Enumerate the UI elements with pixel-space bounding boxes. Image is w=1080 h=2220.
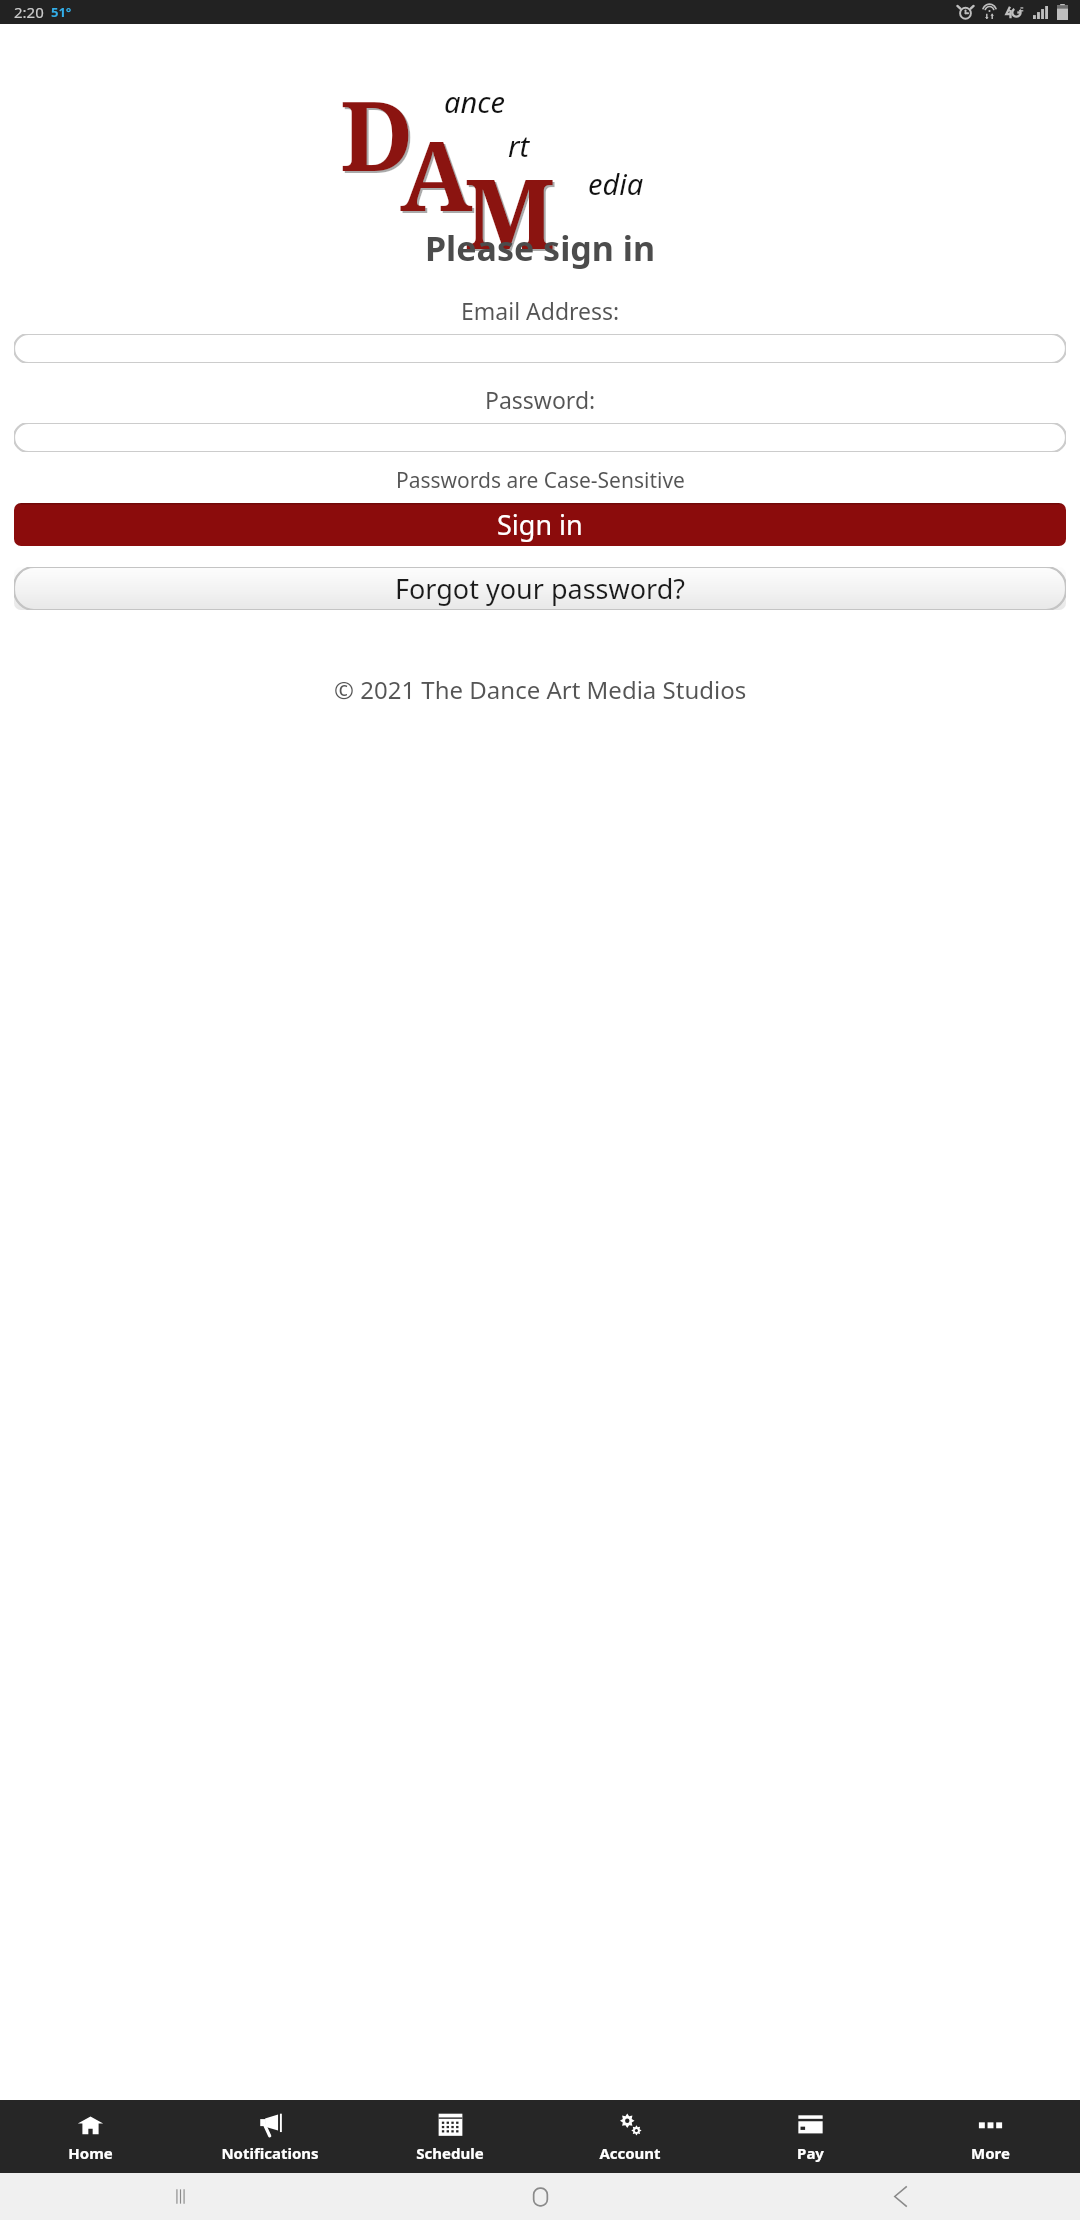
- staticText: Please sign in: [425, 225, 656, 271]
- staticText: Passwords are Case-Sensitive: [396, 466, 685, 495]
- staticText: M: [464, 146, 556, 277]
- staticText: Pay: [797, 2143, 824, 2163]
- staticText: edia: [588, 164, 644, 203]
- staticText: A: [400, 108, 473, 239]
- staticText: © 2021 The Dance Art Media Studios: [334, 673, 747, 706]
- button[interactable]: Pay: [720, 2100, 900, 2173]
- staticText: D: [342, 70, 416, 201]
- staticText: rt: [508, 126, 530, 165]
- staticText: M: [466, 148, 558, 279]
- button[interactable]: Notifications: [180, 2100, 360, 2173]
- staticText: More: [971, 2143, 1010, 2163]
- button[interactable]: Account: [540, 2100, 720, 2173]
- staticText: D: [340, 68, 414, 199]
- staticText: Password:: [485, 384, 596, 415]
- button[interactable]: Home: [360, 2173, 720, 2220]
- staticText: 51°: [51, 3, 72, 21]
- button[interactable]: Sign in: [14, 503, 1066, 546]
- button[interactable]: More: [900, 2100, 1080, 2173]
- button[interactable]: Home: [0, 2100, 180, 2173]
- staticText: Sign in: [497, 506, 583, 543]
- button[interactable]: Forgot your password?: [14, 567, 1066, 610]
- button[interactable]: [14, 334, 1066, 363]
- staticText: Notifications: [221, 2143, 319, 2163]
- staticText: Home: [68, 2143, 113, 2163]
- staticText: Email Address:: [461, 295, 620, 326]
- staticText: ance: [444, 82, 505, 121]
- staticText: Forgot your password?: [395, 570, 686, 607]
- button[interactable]: Back: [720, 2173, 1080, 2220]
- staticText: 2:20: [14, 2, 44, 22]
- staticText: A: [402, 110, 475, 241]
- button[interactable]: [14, 423, 1066, 452]
- button[interactable]: Schedule: [360, 2100, 540, 2173]
- button[interactable]: Recent apps: [0, 2173, 360, 2220]
- staticText: Account: [599, 2143, 661, 2163]
- staticText: Schedule: [416, 2143, 484, 2163]
